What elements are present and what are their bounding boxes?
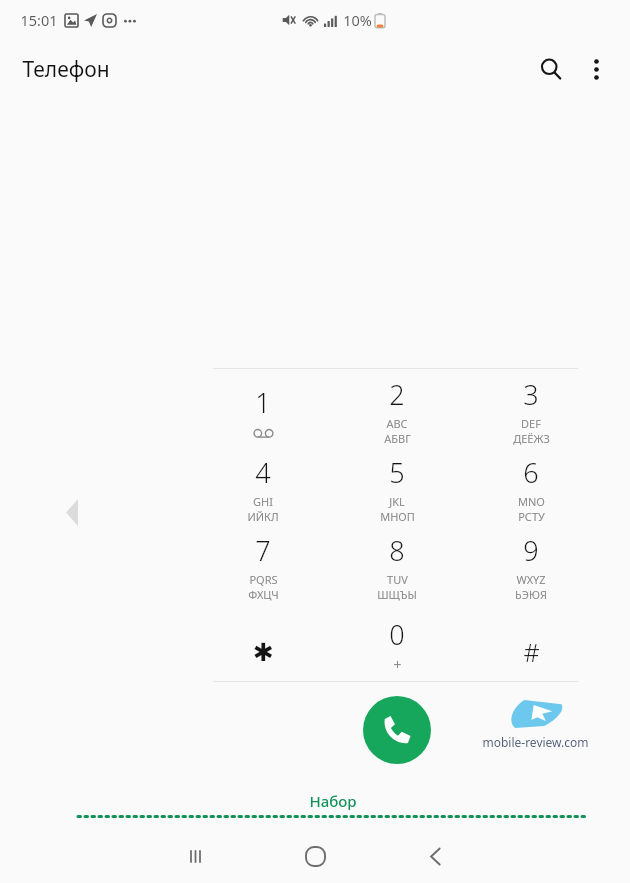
- button[interactable]: More options: [574, 47, 618, 91]
- staticText: ШЩЪЫ: [377, 587, 417, 602]
- staticText: 5: [389, 454, 405, 491]
- button[interactable]: Key 3: [464, 369, 598, 447]
- staticText: Телефон: [22, 55, 110, 84]
- staticText: ФХЦЧ: [248, 587, 279, 602]
- staticText: DEF: [521, 416, 541, 431]
- button[interactable]: Key 5: [330, 447, 464, 525]
- staticText: 6: [523, 454, 539, 491]
- staticText: 7: [255, 532, 271, 569]
- button[interactable]: Key 7: [196, 525, 330, 603]
- staticText: РСТУ: [518, 509, 545, 524]
- button[interactable]: Home: [255, 830, 375, 883]
- staticText: GHI: [253, 494, 273, 509]
- staticText: #: [523, 635, 540, 669]
- button[interactable]: Набор: [78, 778, 588, 830]
- button[interactable]: Key 2: [330, 369, 464, 447]
- staticText: WXYZ: [516, 572, 546, 587]
- staticText: 2: [389, 376, 405, 413]
- other: Edge panel handle: [66, 499, 78, 526]
- staticText: 15:01: [20, 10, 58, 30]
- staticText: 8: [389, 532, 405, 569]
- staticText: Набор: [309, 791, 357, 811]
- staticText: ABC: [386, 416, 408, 431]
- staticText: PQRS: [249, 572, 278, 587]
- button[interactable]: Key 4: [196, 447, 330, 525]
- staticText: ИЙКЛ: [247, 509, 279, 524]
- button[interactable]: Search: [528, 46, 574, 92]
- staticText: ЬЭЮЯ: [515, 587, 547, 602]
- staticText: MNO: [518, 494, 545, 509]
- staticText: JKL: [389, 494, 405, 509]
- staticText: TUV: [387, 572, 408, 587]
- staticText: 0: [389, 616, 405, 653]
- button[interactable]: Key ✱: [196, 603, 330, 681]
- staticText: ДЕЁЖЗ: [513, 431, 550, 446]
- button[interactable]: Recents: [135, 830, 255, 883]
- button[interactable]: Key 9: [464, 525, 598, 603]
- staticText: 3: [523, 376, 539, 413]
- staticText: 9: [523, 532, 539, 569]
- button[interactable]: Key 1: [196, 369, 330, 447]
- staticText: АБВГ: [384, 431, 411, 446]
- button[interactable]: Key #: [464, 603, 598, 681]
- staticText: 1: [255, 384, 271, 421]
- staticText: mobile-review.com: [482, 734, 589, 750]
- staticText: 10%: [343, 10, 372, 30]
- staticText: +: [393, 655, 402, 674]
- button[interactable]: Key 8: [330, 525, 464, 603]
- button[interactable]: Key 0: [330, 603, 464, 681]
- button[interactable]: Call: [363, 696, 431, 764]
- staticText: 4: [255, 454, 271, 491]
- staticText: ✱: [253, 638, 274, 667]
- button[interactable]: Back: [375, 830, 495, 883]
- button[interactable]: Key 6: [464, 447, 598, 525]
- staticText: МНОП: [380, 509, 415, 524]
